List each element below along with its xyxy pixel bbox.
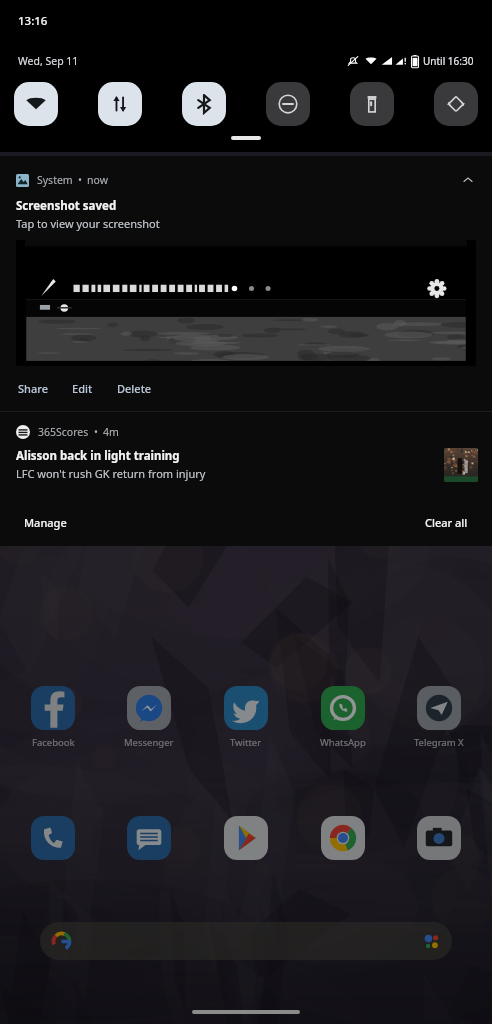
button[interactable]: Edit bbox=[62, 376, 103, 401]
button[interactable]: Bluetooth bbox=[182, 82, 226, 126]
staticText: Screenshot saved bbox=[16, 198, 117, 214]
button[interactable]: Mobile data bbox=[98, 82, 142, 126]
staticText: Tap to view your screenshot bbox=[16, 216, 160, 231]
button[interactable]: Clear all bbox=[413, 509, 480, 536]
staticText: • bbox=[94, 425, 98, 439]
button[interactable]: System bbox=[0, 156, 492, 411]
button[interactable]: Messages bbox=[105, 816, 193, 860]
button[interactable]: Delete bbox=[107, 376, 162, 401]
staticText: • bbox=[78, 173, 82, 187]
staticText: Twitter bbox=[230, 736, 262, 749]
staticText: Manage bbox=[24, 515, 67, 530]
staticText: Messenger bbox=[124, 736, 174, 749]
staticText: Share bbox=[18, 381, 48, 396]
staticText: Telegram X bbox=[414, 736, 464, 749]
button[interactable]: Facebook bbox=[9, 686, 97, 749]
staticText: LFC won't rush GK return from injury bbox=[16, 466, 206, 481]
button[interactable]: Chrome bbox=[299, 816, 387, 860]
staticText: WhatsApp bbox=[320, 736, 366, 749]
staticText: 365Scores bbox=[38, 425, 89, 439]
staticText: System bbox=[37, 173, 73, 187]
staticText: Clear all bbox=[425, 515, 468, 530]
button[interactable]: Do not disturb bbox=[266, 82, 310, 126]
button[interactable]: Phone bbox=[9, 816, 97, 860]
staticText: Wed, Sep 11 bbox=[18, 54, 79, 68]
button[interactable]: Play Store bbox=[202, 816, 290, 860]
button[interactable]: Messenger bbox=[105, 686, 193, 749]
staticText: 4m bbox=[103, 425, 119, 439]
button[interactable]: Collapse bbox=[458, 170, 478, 190]
button[interactable]: Manage bbox=[12, 509, 79, 536]
button[interactable]: Share bbox=[8, 376, 58, 401]
staticText: now bbox=[87, 173, 108, 187]
staticText: Edit bbox=[72, 381, 93, 396]
button[interactable]: Flashlight bbox=[350, 82, 394, 126]
button[interactable]: Camera bbox=[395, 816, 483, 860]
staticText: Alisson back in light training bbox=[16, 448, 180, 464]
button[interactable]: Telegram X bbox=[395, 686, 483, 749]
button[interactable]: Twitter bbox=[202, 686, 290, 749]
staticText: Facebook bbox=[32, 736, 75, 749]
button[interactable]: 365Scores bbox=[0, 412, 492, 496]
staticText: Until 16:30 bbox=[423, 54, 474, 68]
button[interactable]: WhatsApp bbox=[299, 686, 387, 749]
button[interactable]: Auto-rotate bbox=[434, 82, 478, 126]
staticText: Delete bbox=[117, 381, 152, 396]
staticText: 13:16 bbox=[18, 13, 48, 29]
button[interactable]: Wi-Fi bbox=[14, 82, 58, 126]
button[interactable]: Google search bbox=[40, 922, 452, 960]
